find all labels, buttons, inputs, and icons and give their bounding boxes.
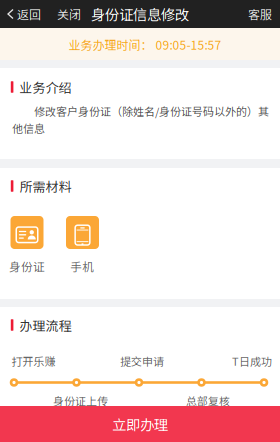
button[interactable]: 关闭: [49, 0, 89, 28]
staticText: 修改客户身份证（除姓名/身份证号码以外的）其他信息: [12, 103, 269, 136]
staticText: 身份证上传: [53, 393, 108, 409]
staticText: 打开乐赚: [11, 353, 55, 369]
button[interactable]: 立即办理: [0, 406, 280, 442]
staticText: T日成功: [232, 353, 272, 369]
staticText: 手机: [70, 258, 94, 275]
button[interactable]: 返回: [0, 0, 49, 28]
staticText: 业务办理时间： 09:05-15:57: [68, 36, 221, 53]
staticText: 关闭: [57, 5, 81, 23]
staticText: 所需材料: [20, 177, 72, 195]
staticText: 办理流程: [20, 316, 72, 334]
staticText: 提交申请: [120, 353, 164, 369]
button[interactable]: 客服: [238, 0, 280, 28]
staticText: 业务介绍: [20, 78, 72, 96]
staticText: 总部复核: [186, 393, 230, 409]
staticText: 返回: [17, 5, 41, 23]
staticText: 立即办理: [112, 414, 168, 434]
staticText: 身份证: [9, 258, 45, 275]
staticText: 身份证信息修改: [91, 4, 189, 24]
staticText: 客服: [248, 5, 272, 23]
